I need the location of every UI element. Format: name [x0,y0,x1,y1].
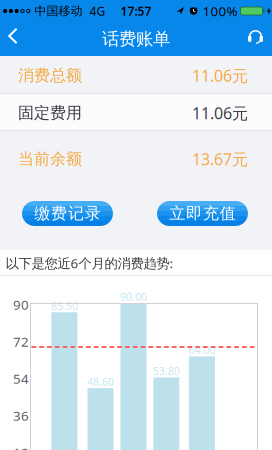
staticText: 54 [13,370,29,387]
button[interactable]: 客服 [248,22,272,56]
staticText: 53.80 [153,364,180,378]
button[interactable]: 立即充值 [157,201,248,226]
staticText: 11.06元 [192,102,248,124]
staticText: 4G [89,3,105,19]
staticText: 36 [13,407,29,424]
staticText: 话费账单 [102,28,170,50]
staticText: 48.60 [87,374,114,389]
staticText: 18 [13,444,29,450]
staticText: 立即充值 [169,204,236,223]
staticText: 当前余额 [18,149,82,169]
staticText: 11.06元 [192,65,248,86]
staticText: 缴费记录 [34,204,101,223]
staticText: 72 [13,333,29,350]
button[interactable]: 返回 [0,22,32,56]
button[interactable]: 缴费记录 [22,201,113,226]
staticText: 中国移动 [34,4,82,18]
staticText: 固定费用 [18,103,82,123]
staticText: 100% [203,2,238,20]
staticText: 90.00 [120,289,147,304]
staticText: 64.00 [188,343,215,357]
staticText: 消费总额 [18,66,82,85]
staticText: 85.50 [51,299,78,313]
staticText: 90 [13,296,29,313]
staticText: 17:57 [120,3,151,19]
staticText: 以下是您近6个月的消费趋势: [5,254,173,272]
staticText: 13.67元 [192,148,248,170]
